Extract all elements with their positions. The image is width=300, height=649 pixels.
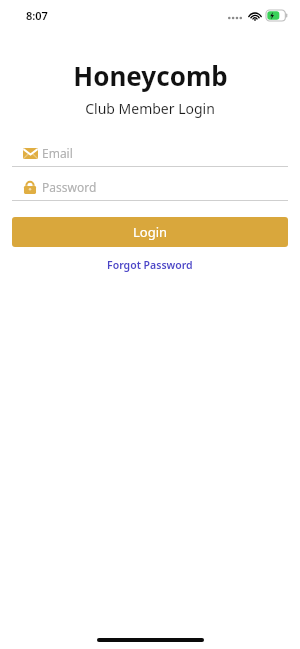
button[interactable]: Forgot Password — [99, 256, 201, 274]
button[interactable]: Email — [12, 142, 288, 164]
staticText: Club Member Login — [85, 99, 215, 118]
staticText: 8:07 — [26, 8, 48, 23]
staticText: Honeycomb — [73, 58, 228, 93]
staticText: Password — [42, 179, 97, 195]
button[interactable]: Password — [12, 176, 288, 198]
staticText: Forgot Password — [107, 258, 193, 272]
staticText: Login — [133, 223, 168, 241]
other: Password — [23, 180, 37, 194]
button[interactable]: Login — [12, 217, 288, 247]
staticText: Email — [42, 145, 73, 161]
other: Email — [23, 146, 38, 161]
